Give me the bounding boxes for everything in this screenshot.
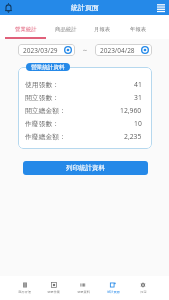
button[interactable]: 年報表 <box>118 15 158 39</box>
staticText: 商品管理 <box>18 290 31 294</box>
button[interactable]: 統計頁面 <box>98 276 128 300</box>
button[interactable]: 營業統計 <box>5 15 46 39</box>
staticText: 31 <box>134 93 142 102</box>
staticText: 2023/04/28 <box>100 46 135 55</box>
button[interactable]: 發票資料 <box>68 276 98 300</box>
staticText: 商品統計 <box>55 26 77 33</box>
staticText: 12,960 <box>120 106 142 115</box>
button[interactable]: 發票作業 <box>39 276 68 300</box>
staticText: 設定 <box>140 290 147 294</box>
staticText: 41 <box>134 80 142 89</box>
staticText: 營業統計資料 <box>31 64 65 71</box>
staticText: ～ <box>82 46 88 54</box>
button[interactable]: 2023/04/28 <box>95 44 152 56</box>
staticText: 發票資料 <box>77 290 90 294</box>
staticText: 2023/03/29 <box>23 46 58 55</box>
staticText: 2,235 <box>124 132 142 141</box>
staticText: 發票作業 <box>47 290 60 294</box>
staticText: 開立總金額： <box>25 106 66 115</box>
button[interactable]: 列印統計資料 <box>23 161 148 175</box>
staticText: 月報表 <box>94 26 111 33</box>
staticText: 作廢張數： <box>25 119 59 128</box>
staticText: 10 <box>134 119 142 128</box>
button[interactable]: Menu <box>153 0 169 15</box>
button[interactable]: 月報表 <box>86 15 118 39</box>
staticText: 營業統計 <box>15 26 37 33</box>
button[interactable]: 設定 <box>128 276 158 300</box>
staticText: 開立張數： <box>25 93 59 102</box>
staticText: 使用張數： <box>25 80 59 89</box>
button[interactable]: 商品管理 <box>10 276 39 300</box>
button[interactable]: Notifications <box>0 0 17 15</box>
staticText: 統計頁面 <box>107 290 120 294</box>
staticText: 統計頁面 <box>71 3 99 12</box>
staticText: 列印統計資料 <box>66 164 105 172</box>
button[interactable]: 商品統計 <box>46 15 86 39</box>
staticText: 作廢總金額： <box>25 132 66 141</box>
staticText: 年報表 <box>130 26 147 33</box>
button[interactable]: 2023/03/29 <box>18 44 75 56</box>
